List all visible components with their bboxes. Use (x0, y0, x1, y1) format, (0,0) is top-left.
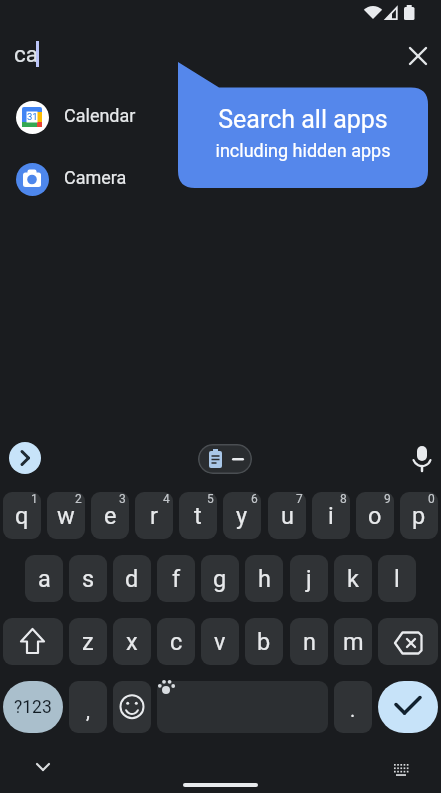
staticText: including hidden apps (178, 140, 428, 161)
staticText: e (104, 502, 117, 530)
button[interactable]: s (69, 555, 107, 602)
button[interactable]: . (334, 681, 372, 733)
staticText: b (257, 628, 271, 656)
button[interactable]: u (268, 492, 306, 539)
staticText: 5 (207, 492, 214, 506)
button[interactable]: h (245, 555, 283, 602)
staticText: v (214, 628, 226, 656)
staticText: r (150, 502, 158, 530)
button[interactable]: m (334, 618, 372, 665)
staticText: ca (14, 41, 39, 67)
button[interactable]: q (3, 492, 41, 539)
staticText: h (258, 565, 271, 593)
button[interactable]: k (334, 555, 372, 602)
staticText: . (350, 698, 356, 721)
staticText: 31 (27, 111, 38, 122)
button[interactable]: c (157, 618, 195, 665)
staticText: g (213, 565, 227, 593)
button[interactable] (26, 752, 58, 784)
button[interactable]: Camera (0, 154, 220, 204)
staticText: n (303, 628, 316, 656)
staticText: 7 (296, 492, 303, 506)
staticText: a (38, 565, 51, 593)
button[interactable] (198, 444, 252, 474)
button[interactable]: v (201, 618, 239, 665)
staticText: p (412, 502, 426, 530)
staticText: q (15, 502, 29, 530)
staticText: 9 (384, 492, 391, 506)
staticText: 3 (119, 492, 126, 506)
button[interactable] (386, 755, 416, 783)
button[interactable]: t (179, 492, 217, 539)
staticText: j (306, 565, 312, 593)
staticText: Camera (64, 167, 127, 188)
button[interactable]: n (290, 618, 328, 665)
staticText: Calendar (64, 105, 136, 126)
staticText: u (281, 502, 294, 530)
staticText: k (347, 565, 359, 593)
button[interactable]: g (201, 555, 239, 602)
button[interactable] (378, 681, 438, 733)
staticText: s (82, 565, 95, 593)
button[interactable]: y (223, 492, 261, 539)
staticText: 4 (163, 492, 170, 506)
staticText: f (172, 565, 181, 593)
button[interactable]: e (91, 492, 129, 539)
button[interactable] (113, 681, 151, 733)
button[interactable]: j (290, 555, 328, 602)
staticText: z (82, 628, 94, 656)
button[interactable]: d (113, 555, 151, 602)
staticText: w (57, 502, 75, 530)
button[interactable]: x (113, 618, 151, 665)
button[interactable]: , (69, 681, 107, 733)
button[interactable] (157, 681, 328, 733)
staticText: y (236, 502, 248, 530)
staticText: t (194, 502, 202, 530)
staticText: 2 (75, 492, 82, 506)
button[interactable]: z (69, 618, 107, 665)
button[interactable]: l (378, 555, 416, 602)
button[interactable] (402, 40, 434, 72)
button[interactable]: 31 (0, 92, 220, 142)
button[interactable]: Search all apps (178, 62, 428, 188)
staticText: l (394, 565, 400, 593)
staticText: x (126, 628, 138, 656)
button[interactable]: b (245, 618, 283, 665)
button[interactable]: ?123 (3, 681, 63, 733)
button[interactable] (9, 442, 41, 474)
button[interactable]: w (47, 492, 85, 539)
staticText: 8 (340, 492, 347, 506)
staticText: Search all apps (178, 105, 428, 134)
staticText: c (170, 628, 183, 656)
staticText: i (328, 502, 334, 530)
staticText: m (343, 628, 364, 656)
staticText: 1 (31, 492, 38, 506)
button[interactable]: p (400, 492, 438, 539)
button[interactable]: a (25, 555, 63, 602)
button[interactable]: r (135, 492, 173, 539)
staticText: 0 (428, 492, 435, 506)
staticText: ?123 (14, 697, 52, 718)
button[interactable] (378, 618, 438, 665)
staticText: d (125, 565, 139, 593)
button[interactable]: i (312, 492, 350, 539)
staticText: o (368, 502, 382, 530)
button[interactable] (408, 443, 436, 475)
staticText: , (86, 699, 90, 722)
button[interactable]: o (356, 492, 394, 539)
staticText: 6 (251, 492, 258, 506)
button[interactable] (3, 618, 63, 665)
button[interactable]: f (157, 555, 195, 602)
